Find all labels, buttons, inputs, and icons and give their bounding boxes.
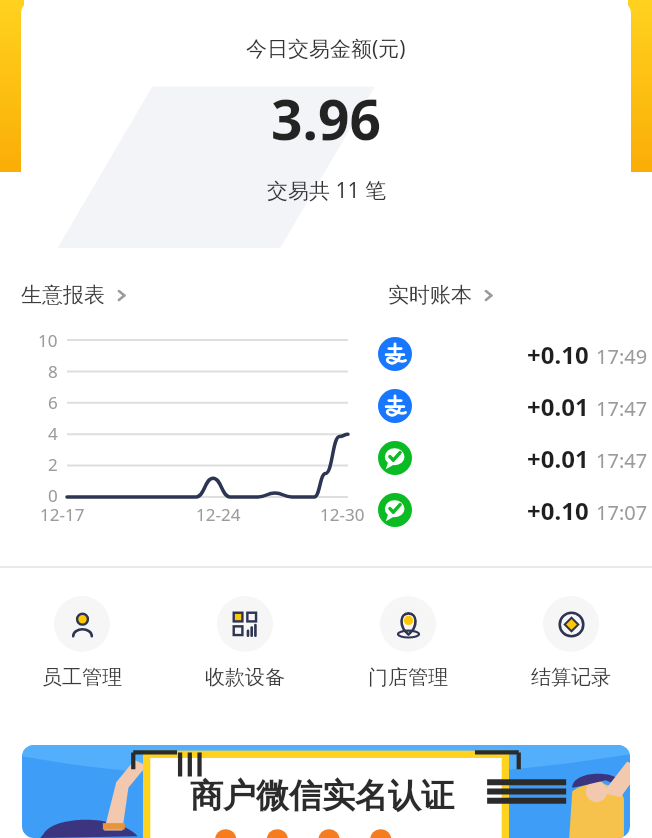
button[interactable]: 生意报表 (21, 282, 128, 308)
staticText: 今日交易金额(元) (246, 34, 406, 63)
staticText: 生意报表 (21, 282, 105, 308)
staticText: 17:49 (596, 343, 648, 370)
staticText: 门店管理 (368, 665, 448, 690)
staticText: 3.96 (271, 81, 381, 156)
button[interactable]: 结算记录 (489, 596, 652, 708)
button[interactable]: 门店管理 (326, 596, 489, 708)
staticText: 交易共 11 笔 (267, 176, 386, 205)
button[interactable]: +0.01 (378, 432, 652, 484)
staticText: +0.01 (527, 442, 589, 475)
staticText: 结算记录 (531, 665, 611, 690)
staticText: 17:47 (596, 395, 648, 422)
staticText: 收款设备 (205, 665, 285, 690)
button[interactable]: +0.10 (378, 328, 652, 380)
staticText: 商户微信实名认证 (190, 775, 454, 817)
staticText: 12-24 (196, 503, 241, 526)
button[interactable]: 员工管理 (0, 596, 163, 708)
staticText: 10 (38, 329, 58, 352)
staticText: 12-17 (40, 503, 85, 526)
staticText: 实时账本 (388, 282, 472, 308)
staticText: +0.01 (527, 390, 589, 423)
staticText: 4 (48, 422, 58, 445)
button[interactable]: +0.10 (378, 484, 652, 536)
staticText: 6 (48, 391, 58, 414)
button[interactable]: 收款设备 (163, 596, 326, 708)
button[interactable]: 实时账本 (388, 282, 495, 308)
staticText: 17:07 (596, 499, 648, 526)
staticText: 2 (48, 453, 58, 476)
button[interactable]: +0.01 (378, 380, 652, 432)
staticText: +0.10 (527, 494, 589, 527)
staticText: 12-30 (320, 503, 365, 526)
staticText: +0.10 (527, 338, 589, 371)
staticText: 8 (48, 360, 58, 383)
staticText: 17:47 (596, 447, 648, 474)
staticText: 0 (48, 484, 58, 507)
staticText: 员工管理 (42, 665, 122, 690)
button[interactable]: 商户微信实名认证 (22, 745, 630, 838)
